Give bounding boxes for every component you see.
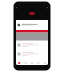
button[interactable]: Tab 2 [22,61,29,65]
button[interactable]: Tab 1 [16,61,22,65]
button[interactable]: Tab 5 [42,61,48,65]
button[interactable]: Tab 3 [29,61,35,65]
button[interactable]: Tab 4 [35,61,42,65]
